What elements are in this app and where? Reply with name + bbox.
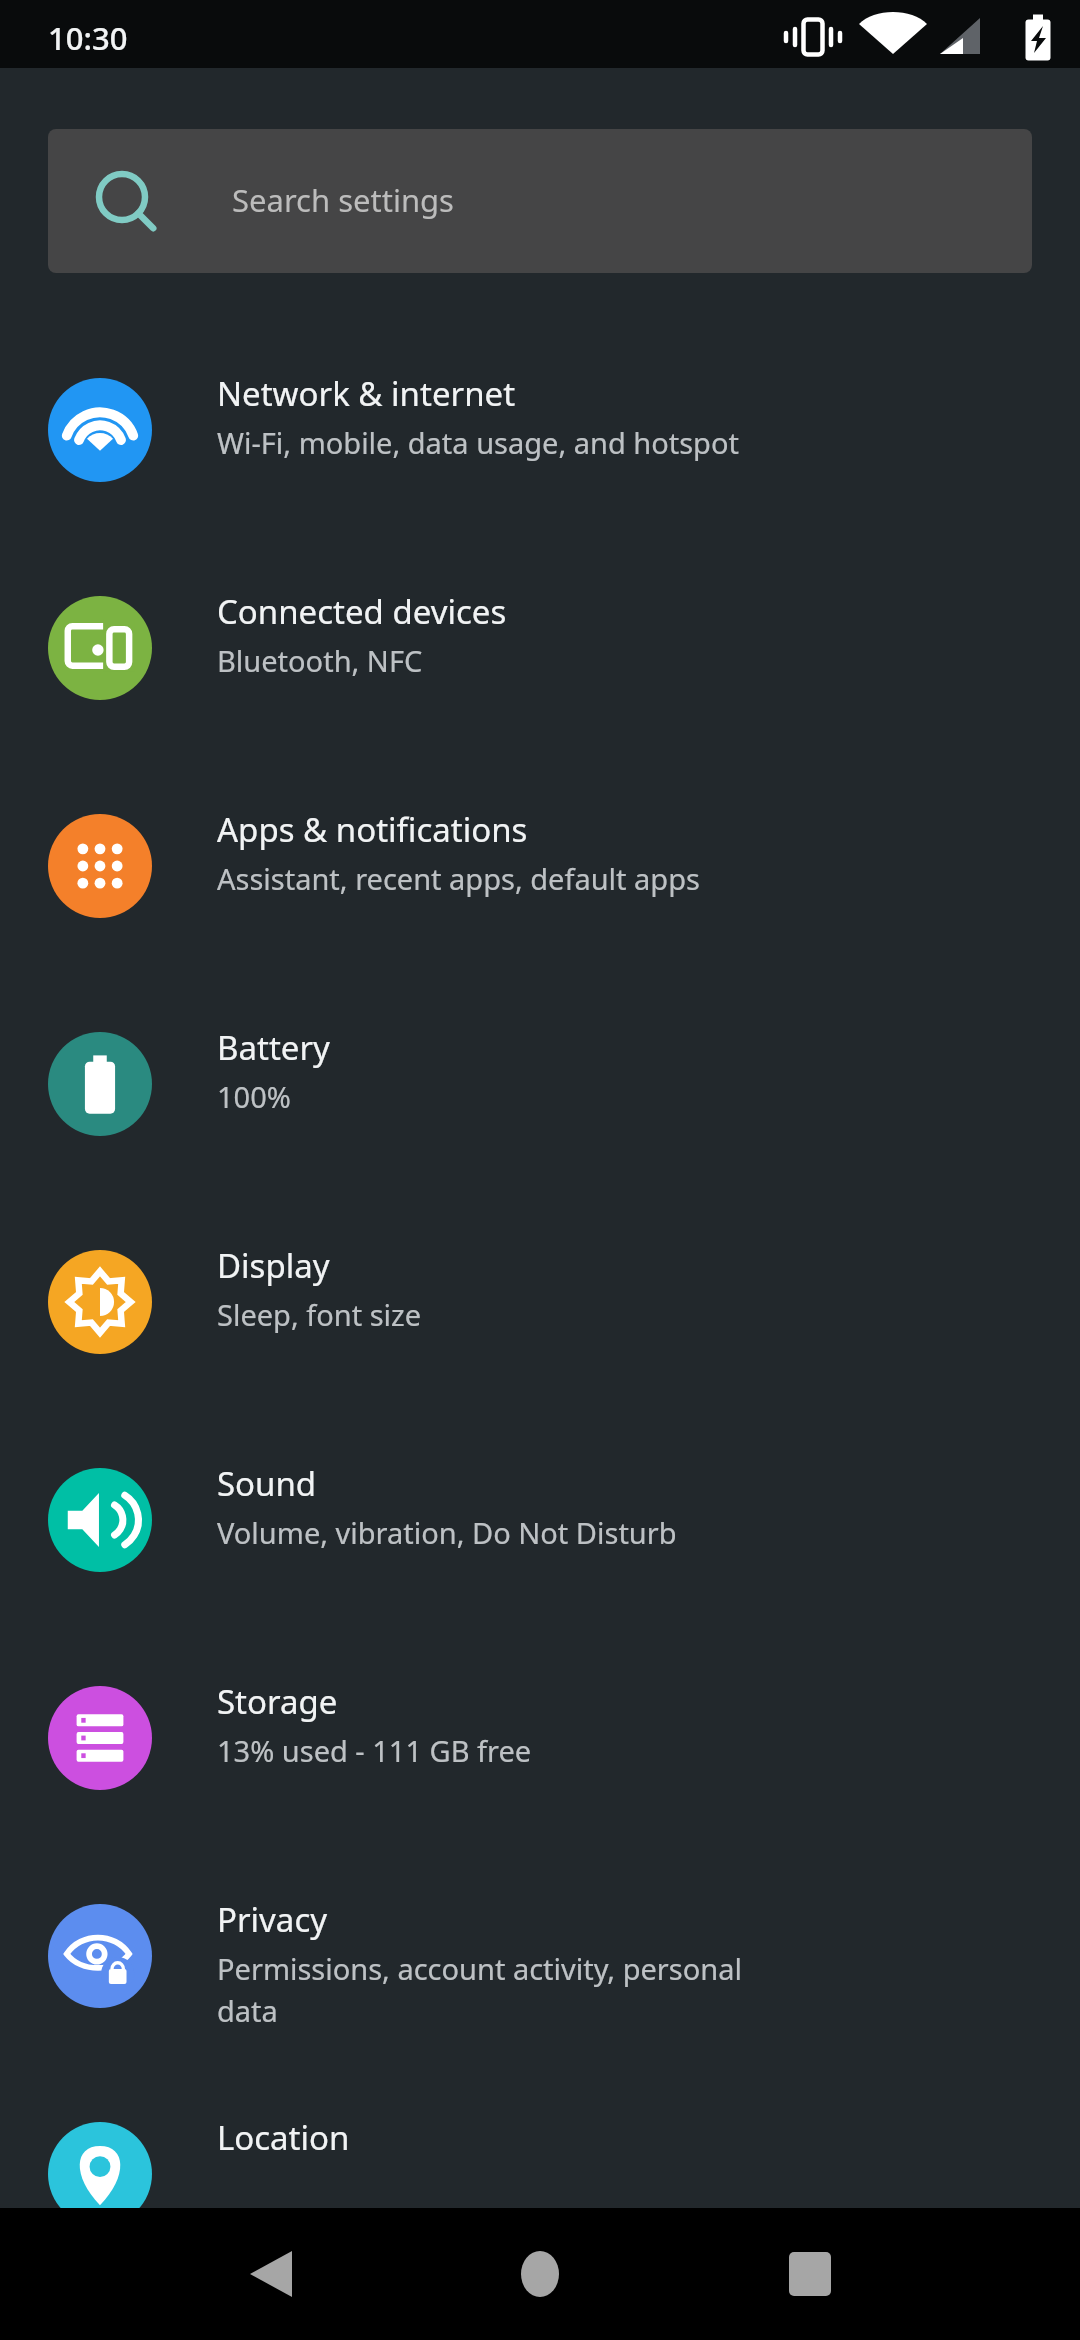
button[interactable]: Display — [0, 1207, 1080, 1397]
staticText: Sleep, font size — [217, 1295, 422, 1334]
button[interactable]: Privacy — [0, 1861, 1080, 2051]
staticText: Display — [217, 1243, 330, 1288]
staticText: Assistant, recent apps, default apps — [217, 859, 700, 898]
staticText: Bluetooth, NFC — [217, 641, 423, 680]
staticText: 10:30 — [48, 17, 128, 59]
staticText: 100% — [217, 1077, 291, 1116]
button[interactable]: Connected devices — [0, 553, 1080, 743]
staticText: Battery — [217, 1025, 330, 1070]
button[interactable]: Network & internet — [0, 335, 1080, 525]
staticText: Search settings — [232, 179, 454, 221]
staticText: Apps & notifications — [217, 807, 528, 852]
staticText: Permissions, account activity, personal … — [217, 1949, 742, 2030]
staticText: Connected devices — [217, 589, 507, 634]
button[interactable]: Search settings — [48, 129, 1032, 273]
button[interactable]: Battery — [0, 989, 1080, 1179]
staticText: Network & internet — [217, 371, 516, 416]
staticText: Storage — [217, 1679, 338, 1724]
staticText: Wi-Fi, mobile, data usage, and hotspot — [217, 423, 739, 462]
button[interactable]: Sound — [0, 1425, 1080, 1615]
button[interactable]: Apps & notifications — [0, 771, 1080, 961]
staticText: 13% used - 111 GB free — [217, 1731, 532, 1770]
staticText: Privacy — [217, 1897, 328, 1942]
staticText: Sound — [217, 1461, 317, 1506]
button[interactable]: Storage — [0, 1643, 1080, 1833]
staticText: Location — [217, 2115, 350, 2160]
button[interactable]: Location — [0, 2079, 1080, 2269]
staticText: Volume, vibration, Do Not Disturb — [217, 1513, 677, 1552]
